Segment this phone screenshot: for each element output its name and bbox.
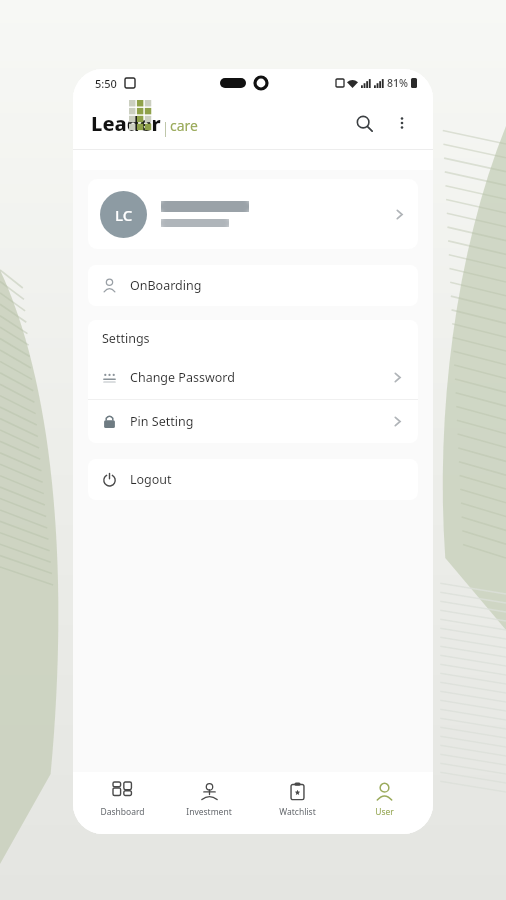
- staticText: 5:50: [95, 76, 117, 91]
- staticText: Investment: [186, 806, 232, 818]
- staticText: OnBoarding: [130, 277, 202, 294]
- button[interactable]: More options: [383, 104, 421, 142]
- button[interactable]: Search: [345, 104, 383, 142]
- staticText: Logout: [130, 471, 172, 488]
- staticText: Leader: [91, 110, 161, 137]
- staticText: Change Password: [130, 369, 391, 386]
- button[interactable]: Investment: [171, 780, 247, 820]
- staticText: Settings: [102, 330, 150, 347]
- button[interactable]: OnBoarding: [88, 265, 418, 306]
- staticText: care: [170, 116, 198, 135]
- button[interactable]: LC: [88, 179, 418, 249]
- button[interactable]: Logout: [88, 459, 418, 500]
- staticText: 81%: [387, 76, 408, 90]
- staticText: User: [375, 806, 394, 818]
- staticText: Watchlist: [279, 806, 316, 818]
- staticText: Pin Setting: [130, 413, 391, 430]
- button[interactable]: Pin Setting: [88, 400, 418, 443]
- staticText: Dashboard: [100, 806, 145, 818]
- button[interactable]: User: [346, 780, 422, 820]
- button[interactable]: Watchlist: [259, 780, 335, 820]
- staticText: LC: [115, 205, 133, 225]
- button[interactable]: Dashboard: [84, 780, 160, 820]
- button[interactable]: Change Password: [88, 356, 418, 399]
